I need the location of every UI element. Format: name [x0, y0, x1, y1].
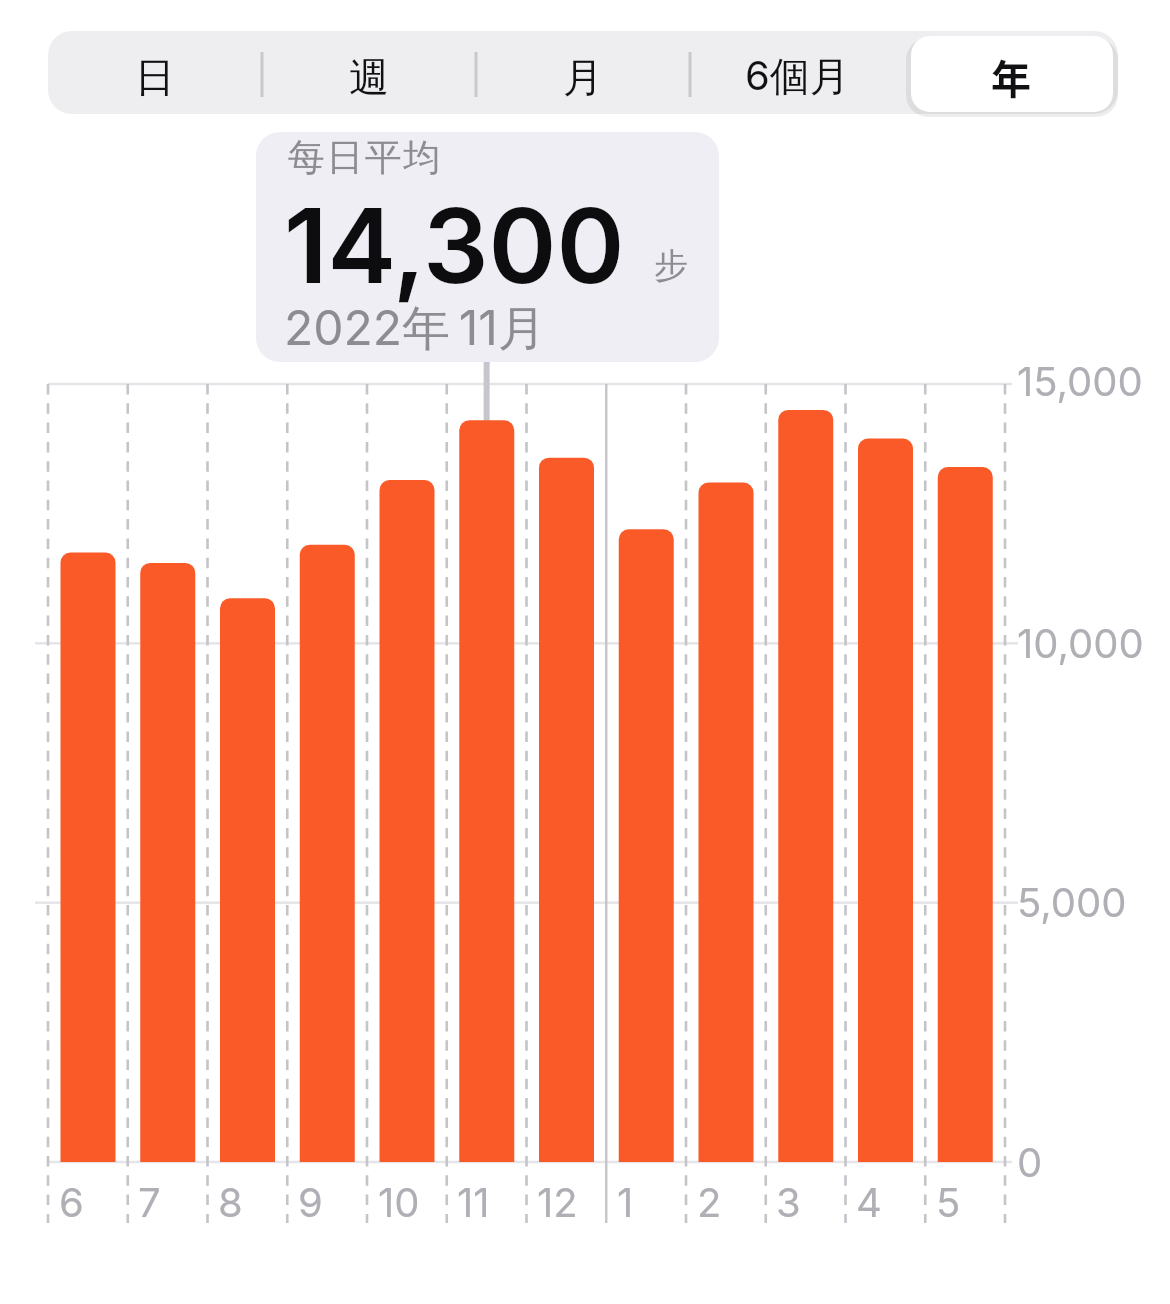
staticText: 14,300: [284, 183, 625, 308]
staticText: 每日平均: [287, 134, 441, 181]
staticText: 日: [135, 52, 175, 102]
staticText: 9: [298, 1178, 323, 1226]
staticText: 4: [856, 1178, 882, 1226]
staticText: 3: [776, 1178, 801, 1226]
staticText: 10: [378, 1178, 420, 1226]
button[interactable]: 月: [476, 35, 690, 118]
staticText: 年: [991, 48, 1031, 106]
staticText: 5,000: [1017, 878, 1127, 926]
staticText: 11: [457, 1178, 490, 1226]
button[interactable]: 週: [262, 35, 476, 118]
staticText: 12: [537, 1178, 578, 1226]
button[interactable]: 年: [904, 35, 1118, 118]
staticText: 6個月: [745, 51, 850, 102]
staticText: 5: [936, 1178, 961, 1226]
staticText: 2022年 11月: [284, 298, 546, 354]
staticText: 1: [617, 1178, 634, 1226]
staticText: 週: [349, 52, 389, 102]
staticText: 8: [218, 1178, 243, 1226]
staticText: 2: [697, 1178, 722, 1226]
button[interactable]: 日: [48, 35, 262, 118]
staticText: 0: [1017, 1138, 1043, 1186]
staticText: 月: [563, 52, 603, 102]
staticText: 步: [654, 244, 688, 287]
staticText: 15,000: [1017, 357, 1143, 405]
button[interactable]: 6個月: [690, 35, 904, 118]
staticText: 7: [138, 1178, 161, 1226]
staticText: 10,000: [1017, 619, 1144, 667]
staticText: 6: [59, 1178, 84, 1226]
